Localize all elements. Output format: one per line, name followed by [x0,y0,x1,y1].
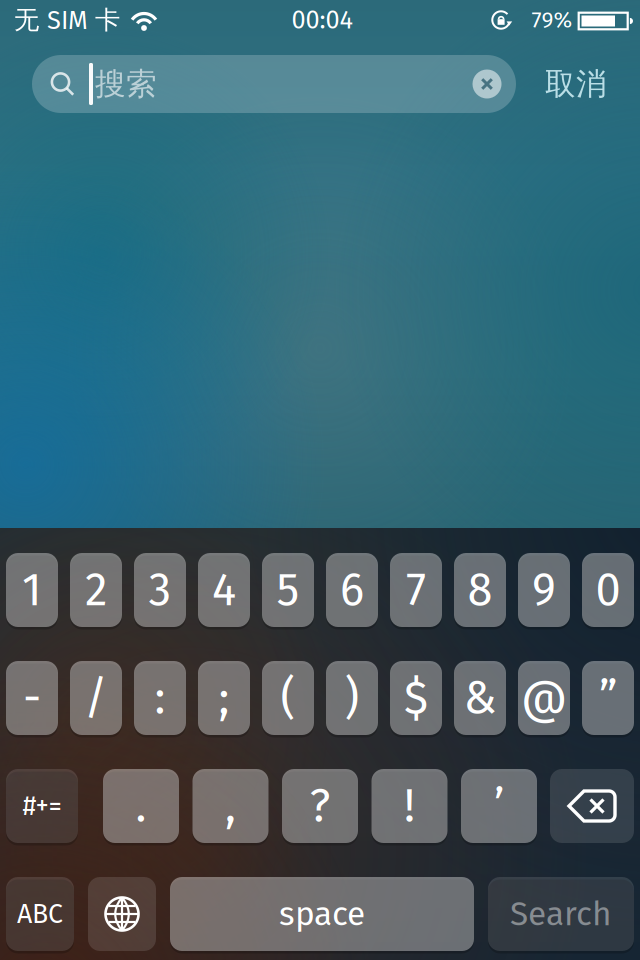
button[interactable]: 6 [326,553,378,627]
button[interactable]: Delete [550,769,634,843]
button[interactable]: - [6,661,58,735]
button[interactable]: 5 [262,553,314,627]
staticText: - [23,671,41,725]
staticText: 4 [212,563,236,617]
staticText: ( [280,671,295,725]
staticText: ” [599,671,617,725]
button[interactable]: ” [582,661,634,735]
staticText: @ [521,671,567,725]
button[interactable]: 8 [454,553,506,627]
staticText: ! [404,779,415,833]
button[interactable]: 2 [70,553,122,627]
button[interactable]: . [103,769,179,843]
button[interactable]: 4 [198,553,250,627]
staticText: 9 [532,563,556,617]
staticText: ) [344,671,359,725]
staticText: $ [404,671,428,725]
staticText: 无 SIM 卡 [14,4,120,36]
staticText: & [463,671,496,725]
button[interactable]: 7 [390,553,442,627]
button[interactable]: ( [262,661,314,735]
button[interactable]: ABC [6,877,74,951]
staticText: 5 [276,563,299,617]
button[interactable]: #+= [6,769,78,843]
button[interactable]: ! [371,769,447,843]
staticText: 7 [406,563,426,617]
button[interactable]: & [454,661,506,735]
button[interactable]: ’ [461,769,537,843]
staticText: ? [309,779,330,833]
button[interactable]: 取消 [545,65,607,103]
staticText: 79% [531,6,572,34]
staticText: ; [218,671,229,725]
button[interactable]: / [70,661,122,735]
staticText: 取消 [545,65,607,103]
button[interactable]: 1 [6,553,58,627]
button[interactable]: : [134,661,186,735]
button[interactable]: , [192,769,268,843]
button[interactable]: 3 [134,553,186,627]
button[interactable]: 搜索 [32,55,516,113]
button[interactable]: Clear text [472,69,502,99]
button[interactable]: Change keyboard language [88,877,156,951]
staticText: ’ [494,779,504,833]
staticText: 8 [467,563,492,617]
button[interactable]: Search [488,877,634,951]
staticText: 2 [85,563,107,617]
staticText: space [279,894,365,934]
button[interactable]: 9 [518,553,570,627]
button[interactable]: ? [282,769,358,843]
staticText: / [84,671,108,725]
staticText: 00:04 [291,5,352,35]
button[interactable]: 0 [582,553,634,627]
staticText: , [225,779,236,833]
staticText: 搜索 [95,65,157,103]
button[interactable]: ) [326,661,378,735]
staticText: 1 [22,563,42,617]
staticText: : [154,671,165,725]
staticText: 6 [340,563,364,617]
button[interactable]: space [170,877,474,951]
button[interactable]: $ [390,661,442,735]
staticText: . [135,779,146,833]
staticText: 0 [595,563,620,617]
staticText: #+= [22,790,61,822]
staticText: Search [510,894,612,934]
staticText: ABC [17,898,63,930]
button[interactable]: @ [518,661,570,735]
button[interactable]: ; [198,661,250,735]
staticText: 3 [148,563,171,617]
